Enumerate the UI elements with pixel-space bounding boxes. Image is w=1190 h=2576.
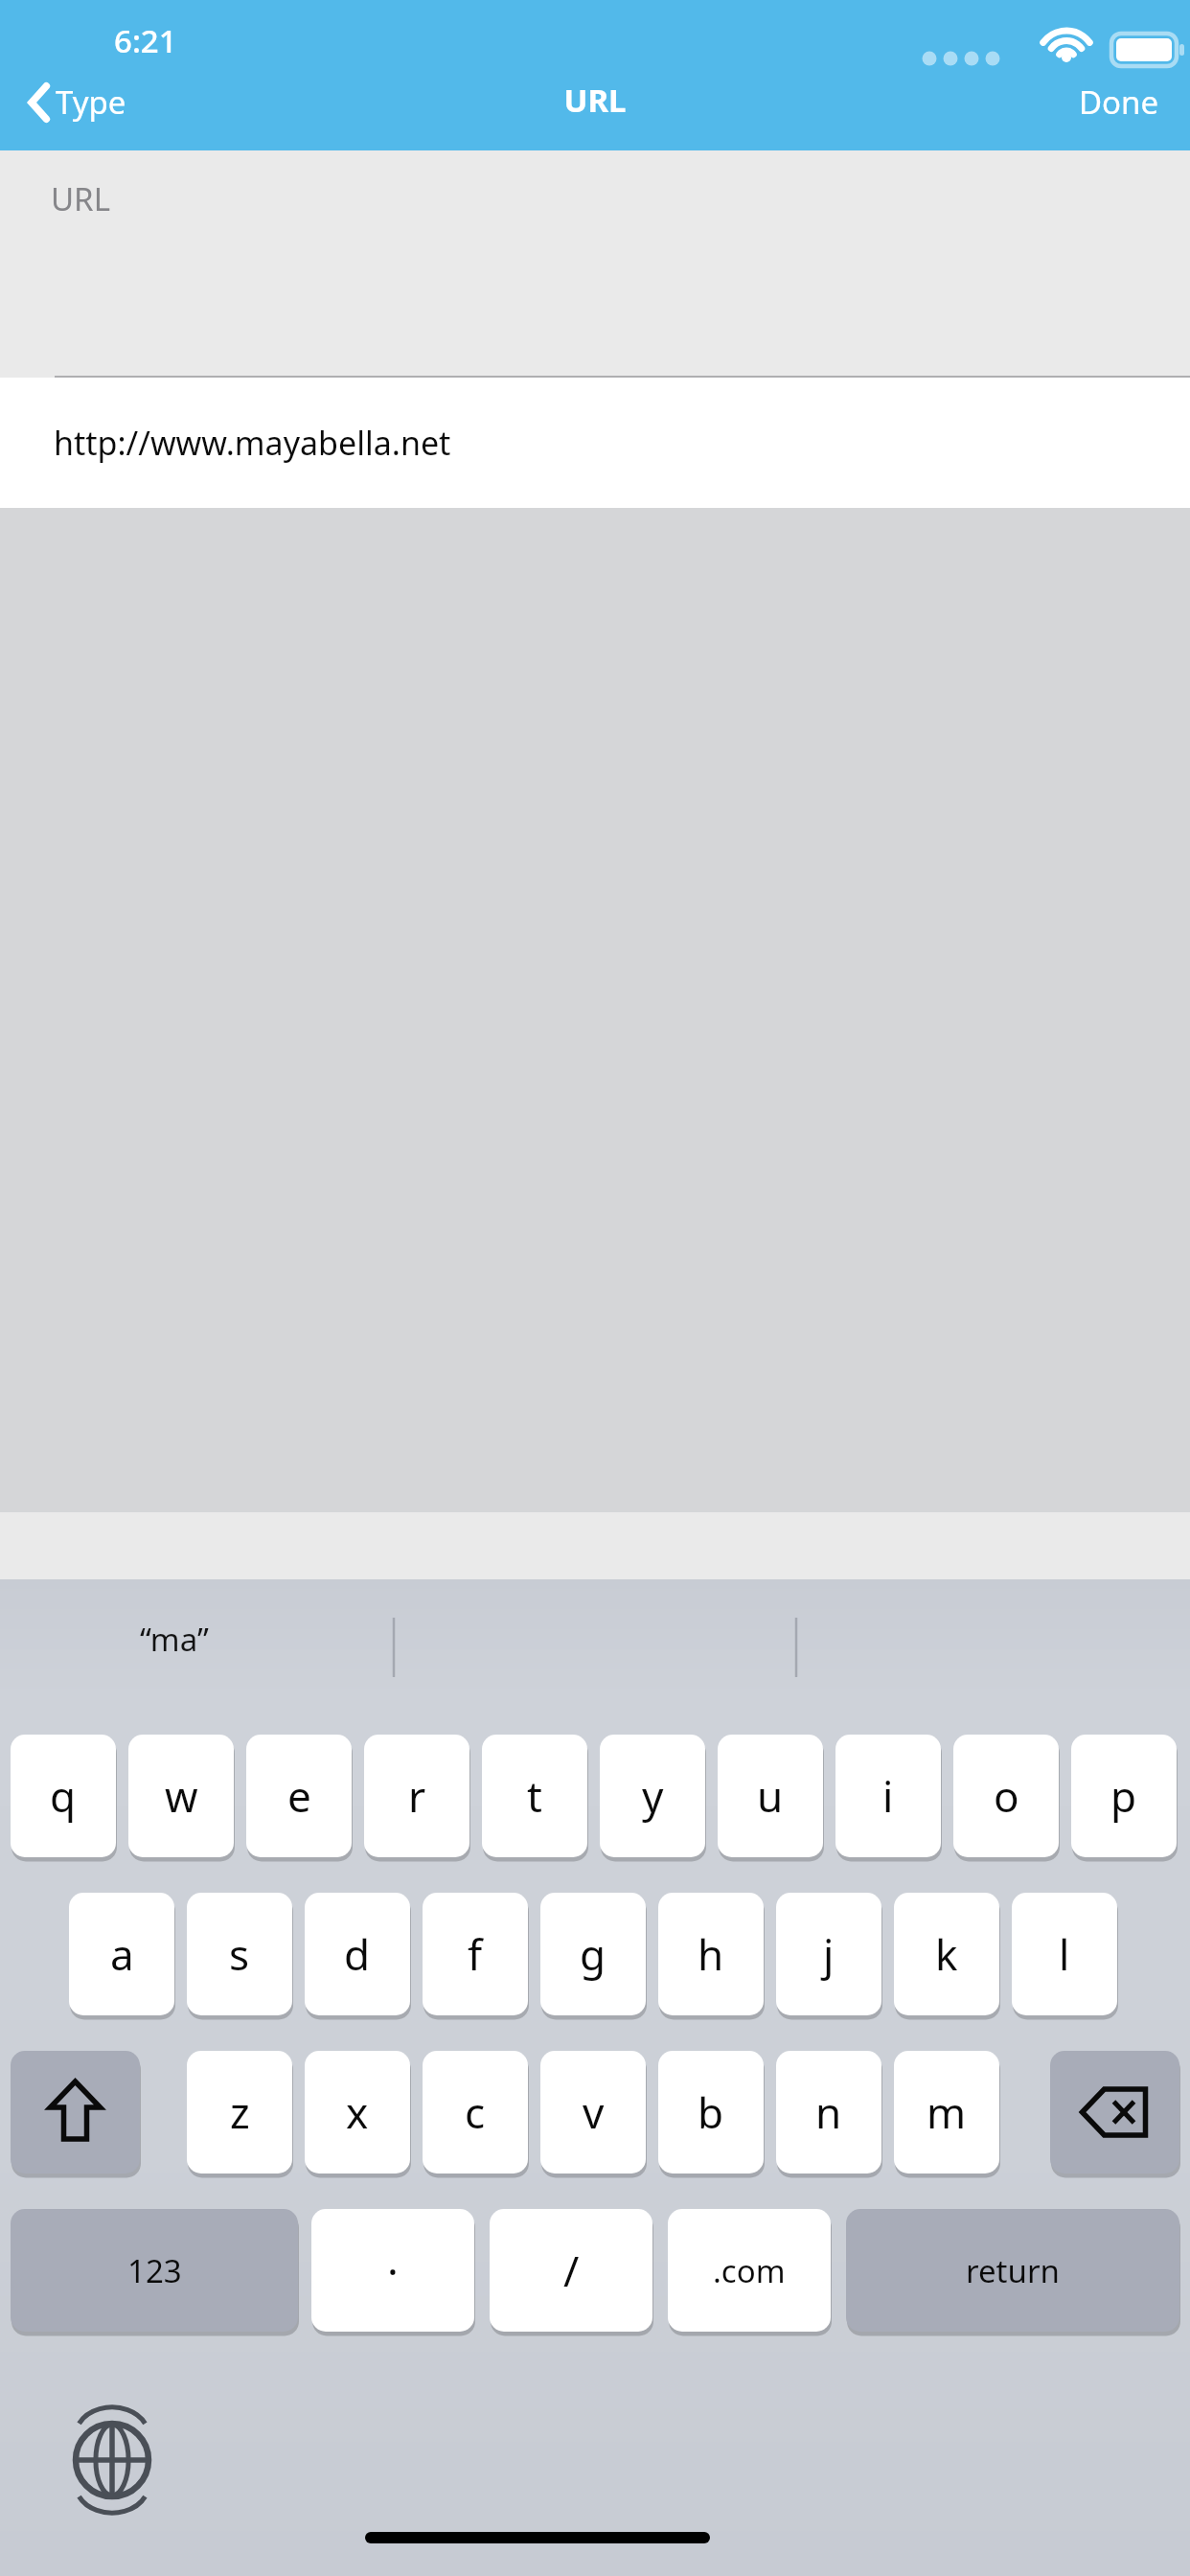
staticText: w [165, 1767, 198, 1825]
staticText: f [468, 1925, 483, 1983]
button[interactable]: j [776, 1893, 881, 2015]
staticText: h [698, 1925, 724, 1983]
button[interactable]: Backspace [1050, 2051, 1179, 2173]
button[interactable]: h [658, 1893, 764, 2015]
staticText: URL [51, 177, 110, 220]
button[interactable]: u [718, 1735, 823, 1857]
staticText: n [815, 2083, 842, 2141]
button[interactable]: Type [21, 75, 134, 129]
button[interactable]: Shift [11, 2051, 140, 2173]
staticText: “ma” [140, 1618, 209, 1661]
button[interactable]: 123 [11, 2209, 298, 2332]
staticText: .com [713, 2249, 786, 2292]
staticText: v [583, 2083, 605, 2141]
button[interactable]: w [128, 1735, 234, 1857]
button[interactable]: y [600, 1735, 705, 1857]
button[interactable]: o [953, 1735, 1059, 1857]
staticText: c [465, 2083, 486, 2141]
staticText: 6:21 [114, 19, 177, 62]
staticText: return [966, 2249, 1060, 2292]
button[interactable]: n [776, 2051, 881, 2173]
staticText: s [229, 1925, 250, 1983]
button[interactable]: t [482, 1735, 587, 1857]
button[interactable]: http://www.mayabella.net [0, 378, 1190, 508]
button[interactable]: r [364, 1735, 469, 1857]
staticText: y [642, 1767, 664, 1825]
button[interactable]: l [1012, 1893, 1117, 2015]
button[interactable]: return [846, 2209, 1179, 2332]
staticText: d [344, 1925, 371, 1983]
staticText: Type [56, 80, 126, 124]
button[interactable]: v [540, 2051, 646, 2173]
button[interactable]: i [835, 1735, 941, 1857]
button[interactable]: k [894, 1893, 999, 2015]
staticText: g [580, 1925, 606, 1983]
staticText: l [1059, 1925, 1070, 1983]
staticText: http://www.mayabella.net [54, 421, 451, 465]
staticText: o [994, 1767, 1019, 1825]
staticText: z [230, 2083, 250, 2141]
staticText: URL [563, 79, 627, 122]
button[interactable]: “ma” [0, 1579, 393, 1713]
button[interactable]: .com [668, 2209, 831, 2332]
staticText: 123 [127, 2249, 182, 2292]
button[interactable]: c [423, 2051, 528, 2173]
staticText: m [927, 2083, 967, 2141]
button[interactable]: e [246, 1735, 352, 1857]
staticText: u [757, 1767, 784, 1825]
staticText: x [346, 2083, 369, 2141]
button[interactable]: / [490, 2209, 652, 2332]
staticText: r [408, 1767, 426, 1825]
staticText: j [823, 1925, 835, 1983]
button[interactable]: g [540, 1893, 646, 2015]
button[interactable]: d [305, 1893, 410, 2015]
button[interactable]: f [423, 1893, 528, 2015]
button[interactable]: . [311, 2209, 474, 2332]
button[interactable]: s [187, 1893, 292, 2015]
staticText: p [1110, 1767, 1137, 1825]
button[interactable]: m [894, 2051, 999, 2173]
staticText: Done [1079, 80, 1159, 124]
staticText: b [698, 2083, 724, 2141]
staticText: q [50, 1767, 77, 1825]
staticText: i [882, 1767, 894, 1825]
button[interactable]: z [187, 2051, 292, 2173]
staticText: t [527, 1767, 542, 1825]
staticText: / [563, 2242, 580, 2299]
button[interactable]: x [305, 2051, 410, 2173]
staticText: e [287, 1767, 311, 1825]
staticText: . [387, 2230, 399, 2288]
button[interactable]: p [1071, 1735, 1177, 1857]
button[interactable]: b [658, 2051, 764, 2173]
staticText: k [935, 1925, 958, 1983]
button[interactable]: a [69, 1893, 174, 2015]
staticText: a [110, 1925, 134, 1983]
button[interactable]: Done [1069, 75, 1169, 129]
button[interactable]: Switch keyboard [76, 2424, 149, 2497]
button[interactable]: q [11, 1735, 116, 1857]
